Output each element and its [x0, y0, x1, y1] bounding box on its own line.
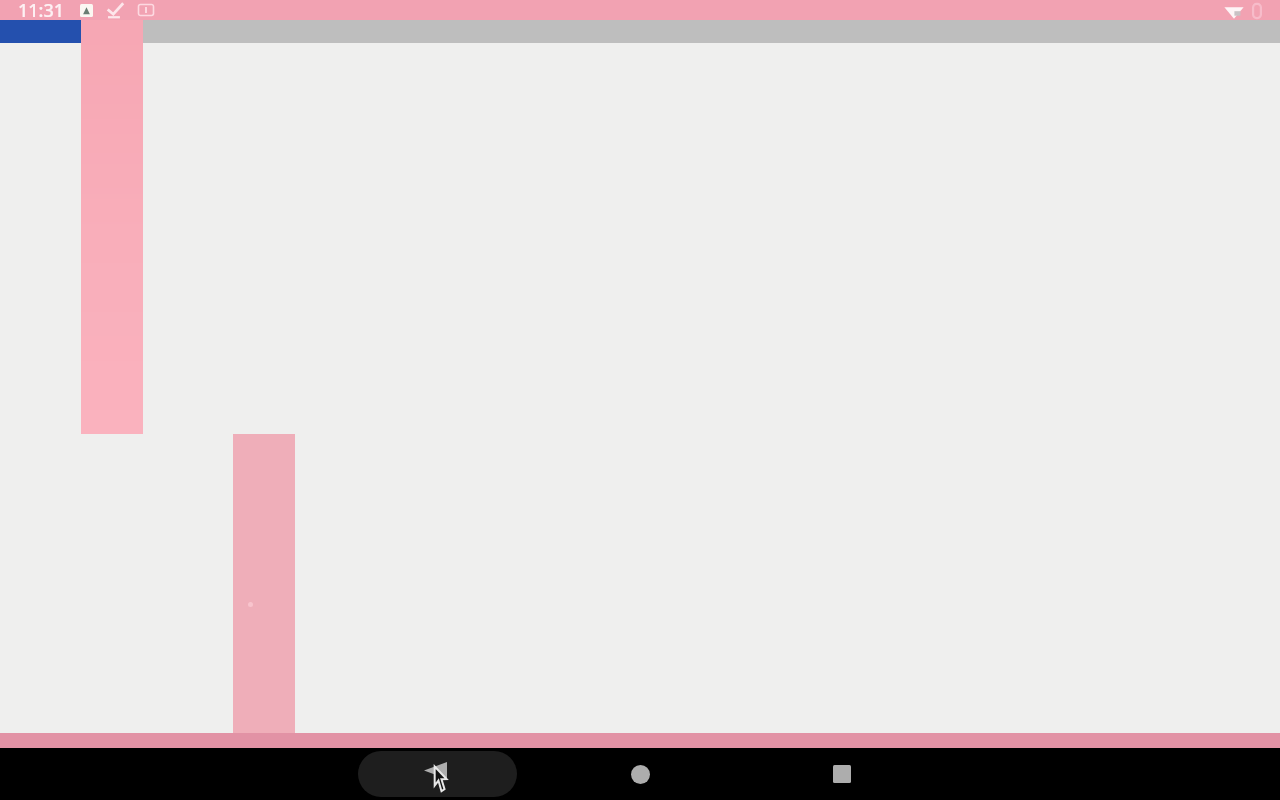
- button[interactable]: Bar 1: [81, 0, 143, 434]
- staticText: 11:31: [18, 0, 65, 18]
- button[interactable]: Recent apps: [822, 754, 862, 794]
- button[interactable]: Back: [358, 751, 517, 797]
- button[interactable]: Home: [620, 754, 660, 794]
